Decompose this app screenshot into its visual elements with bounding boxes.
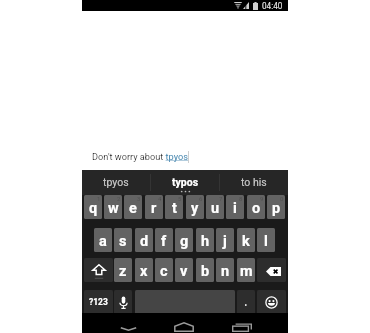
staticText: d — [140, 233, 149, 250]
button[interactable]: d — [135, 228, 153, 252]
button[interactable]: tpyos — [82, 170, 150, 195]
staticText: 4 — [158, 195, 162, 202]
staticText: j — [223, 233, 227, 250]
staticText: typos — [172, 176, 199, 188]
staticText: 8 — [239, 195, 243, 202]
staticText: to his — [241, 176, 267, 188]
button[interactable]: y — [186, 195, 204, 219]
button[interactable]: to his — [220, 170, 288, 195]
button[interactable]: typos — [151, 170, 219, 195]
button[interactable]: p — [267, 195, 285, 219]
staticText: a — [99, 233, 107, 250]
staticText: f — [161, 233, 167, 250]
staticText: 7 — [219, 195, 223, 202]
button[interactable] — [237, 290, 255, 314]
staticText: 3 — [137, 195, 141, 202]
button[interactable]: Home — [154, 313, 214, 333]
staticText: l — [264, 233, 268, 250]
staticText: m — [240, 263, 253, 280]
button[interactable]: b — [196, 258, 214, 282]
staticText: c — [160, 263, 168, 280]
button[interactable]: l — [257, 228, 275, 252]
staticText: p — [272, 200, 281, 217]
button[interactable]: Voice input — [114, 290, 132, 314]
button[interactable]: a — [94, 228, 112, 252]
staticText: z — [119, 263, 127, 280]
staticText: 6 — [199, 195, 203, 202]
button[interactable]: w — [104, 195, 122, 219]
staticText: tpyos — [103, 176, 129, 188]
staticText: x — [140, 263, 148, 280]
button[interactable]: o — [247, 195, 265, 219]
button[interactable]: r — [145, 195, 163, 219]
button[interactable]: Space — [135, 290, 235, 314]
button[interactable]: e — [124, 195, 142, 219]
staticText: i — [233, 200, 237, 217]
staticText: u — [211, 200, 220, 217]
staticText: s — [119, 233, 127, 250]
button[interactable]: k — [237, 228, 255, 252]
staticText: 04:40 — [262, 1, 283, 11]
button[interactable]: Recent apps — [212, 313, 262, 333]
button[interactable]: i — [226, 195, 244, 219]
staticText: e — [129, 200, 137, 217]
button[interactable]: c — [155, 258, 173, 282]
button[interactable]: j — [216, 228, 234, 252]
button[interactable]: q — [84, 195, 102, 219]
button[interactable]: m — [237, 258, 255, 282]
button[interactable]: n — [216, 258, 234, 282]
staticText: h — [201, 233, 210, 250]
staticText: 9 — [260, 195, 264, 202]
staticText: 2 — [117, 195, 121, 202]
staticText: 5 — [178, 195, 182, 202]
button[interactable]: f — [155, 228, 173, 252]
button[interactable]: Emoji — [257, 290, 286, 314]
staticText: r — [151, 200, 157, 217]
staticText: t — [172, 200, 177, 217]
button[interactable]: s — [114, 228, 132, 252]
button[interactable]: x — [135, 258, 153, 282]
button[interactable]: Hide keyboard — [109, 313, 149, 333]
staticText: v — [180, 263, 188, 280]
button[interactable]: h — [196, 228, 214, 252]
staticText: o — [252, 200, 261, 217]
button[interactable]: z — [114, 258, 132, 282]
staticText: ?123 — [89, 297, 108, 307]
staticText: k — [242, 233, 250, 250]
staticText: n — [221, 263, 230, 280]
staticText: y — [191, 200, 199, 217]
staticText: 0 — [280, 195, 284, 202]
button[interactable]: u — [206, 195, 224, 219]
button[interactable]: g — [175, 228, 193, 252]
button[interactable]: Delete — [257, 258, 286, 282]
staticText: q — [89, 200, 98, 217]
staticText: 1 — [97, 195, 101, 202]
button[interactable]: ?123 — [84, 290, 113, 314]
staticText: b — [201, 263, 210, 280]
staticText: w — [108, 200, 119, 217]
button[interactable]: Shift — [84, 258, 113, 282]
button[interactable]: t — [165, 195, 183, 219]
staticText: g — [180, 233, 189, 250]
button[interactable]: v — [175, 258, 193, 282]
staticText: Don't worry about tpyos — [92, 151, 188, 162]
